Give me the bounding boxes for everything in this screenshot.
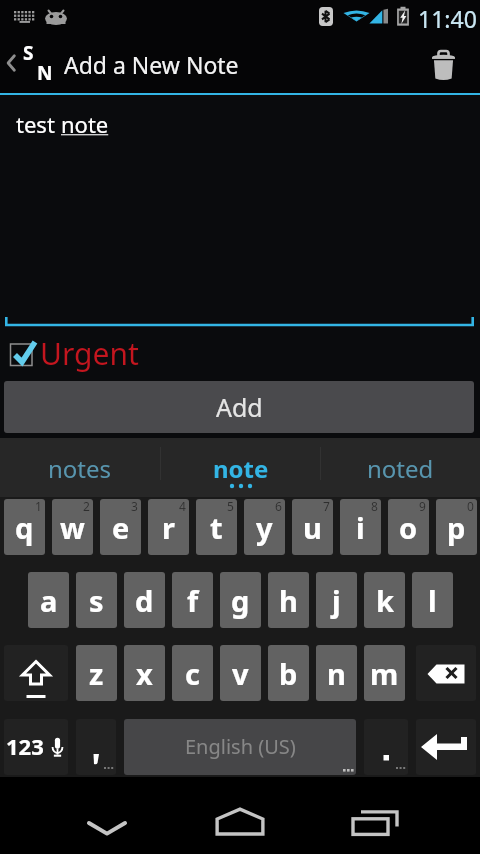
staticText: 7: [323, 499, 330, 514]
button[interactable]: b: [268, 645, 309, 701]
staticText: q: [15, 508, 34, 547]
staticText: p: [447, 508, 466, 547]
button[interactable]: Delete note: [420, 33, 480, 93]
button[interactable]: g: [220, 572, 261, 628]
button[interactable]: Backspace: [416, 645, 476, 701]
staticText: 1: [35, 499, 42, 514]
staticText: 123: [6, 731, 44, 761]
staticText: Add a New Note: [64, 49, 239, 80]
staticText: f: [187, 581, 199, 620]
button[interactable]: x: [124, 645, 165, 701]
button[interactable]: r: [148, 499, 189, 555]
button[interactable]: Hide keyboard: [67, 777, 147, 854]
staticText: a: [40, 581, 58, 620]
staticText: u: [303, 508, 322, 547]
button[interactable]: Period: [364, 719, 408, 775]
staticText: Urgent: [40, 333, 139, 373]
staticText: 8: [371, 499, 378, 514]
staticText: 0: [467, 499, 474, 514]
staticText: N: [37, 60, 53, 86]
button[interactable]: m: [364, 645, 405, 701]
button[interactable]: Symbols and voice input: [4, 719, 68, 775]
staticText: notes: [48, 452, 112, 485]
staticText: s: [89, 581, 104, 620]
staticText: g: [231, 581, 250, 620]
staticText: note: [213, 452, 269, 485]
button[interactable]: s: [76, 572, 117, 628]
button[interactable]: n: [316, 645, 357, 701]
staticText: m: [370, 654, 399, 693]
button[interactable]: w: [52, 499, 93, 555]
staticText: English (US): [185, 733, 296, 760]
button[interactable]: e: [100, 499, 141, 555]
staticText: w: [60, 508, 85, 547]
button[interactable]: Navigate up: [0, 33, 250, 93]
button[interactable]: u: [292, 499, 333, 555]
staticText: h: [279, 581, 298, 620]
button[interactable]: noted: [321, 438, 480, 497]
button[interactable]: Enter: [416, 719, 476, 775]
staticText: x: [136, 654, 153, 693]
button[interactable]: note: [161, 438, 320, 497]
staticText: t: [210, 508, 223, 547]
staticText: b: [279, 654, 298, 693]
staticText: S: [23, 40, 34, 66]
button[interactable]: Recent apps: [335, 777, 415, 854]
staticText: 5: [227, 499, 234, 514]
staticText: k: [376, 581, 394, 620]
button[interactable]: z: [76, 645, 117, 701]
staticText: 2: [83, 499, 90, 514]
staticText: n: [327, 654, 346, 693]
staticText: l: [428, 581, 437, 620]
button[interactable]: d: [124, 572, 165, 628]
button[interactable]: q: [4, 499, 45, 555]
button[interactable]: Add: [4, 381, 474, 433]
staticText: Add: [216, 390, 263, 424]
staticText: c: [185, 654, 200, 693]
button[interactable]: h: [268, 572, 309, 628]
button[interactable]: i: [340, 499, 381, 555]
button[interactable]: j: [316, 572, 357, 628]
button[interactable]: notes: [0, 438, 160, 497]
button[interactable]: Home: [200, 777, 280, 854]
staticText: 3: [131, 499, 138, 514]
staticText: 9: [419, 499, 426, 514]
button[interactable]: Comma: [76, 719, 116, 775]
button[interactable]: l: [412, 572, 453, 628]
staticText: test: [16, 109, 61, 139]
staticText: 4: [179, 499, 186, 514]
button[interactable]: o: [388, 499, 429, 555]
button[interactable]: y: [244, 499, 285, 555]
staticText: j: [332, 581, 341, 620]
staticText: 6: [275, 499, 282, 514]
staticText: 11:40: [418, 3, 477, 34]
staticText: i: [356, 508, 365, 547]
staticText: note: [61, 109, 109, 139]
staticText: o: [399, 508, 418, 547]
button[interactable]: f: [172, 572, 213, 628]
button[interactable]: Urgent: [4, 336, 144, 376]
staticText: noted: [367, 452, 434, 485]
staticText: z: [89, 654, 104, 693]
button[interactable]: p: [436, 499, 477, 555]
button[interactable]: t: [196, 499, 237, 555]
staticText: y: [256, 508, 273, 547]
staticText: v: [232, 654, 249, 693]
button[interactable]: Shift: [4, 645, 68, 701]
staticText: e: [112, 508, 130, 547]
button[interactable]: Space: [124, 719, 356, 775]
button[interactable]: a: [28, 572, 69, 628]
button[interactable]: v: [220, 645, 261, 701]
button[interactable]: k: [364, 572, 405, 628]
staticText: r: [162, 508, 175, 547]
staticText: d: [135, 581, 154, 620]
button[interactable]: c: [172, 645, 213, 701]
